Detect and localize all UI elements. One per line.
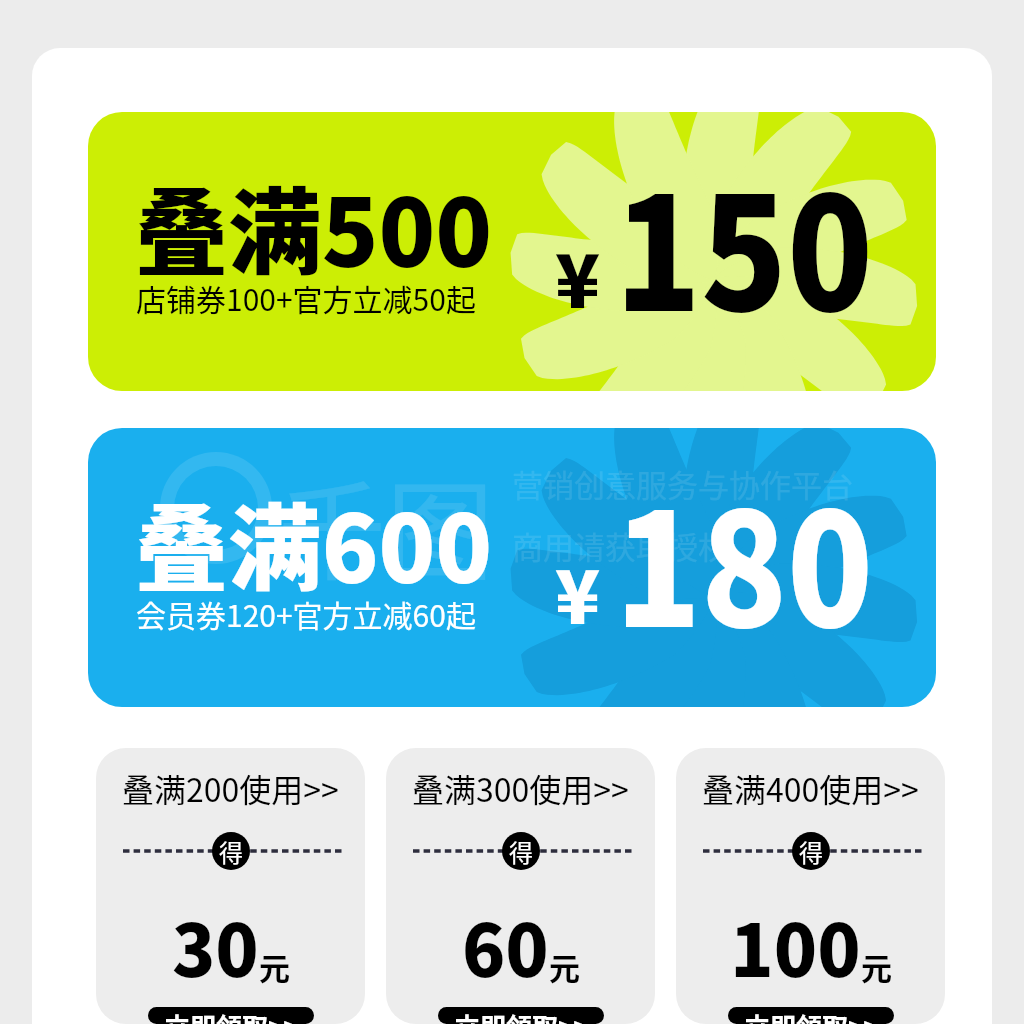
staticText: 千图 bbox=[278, 446, 495, 602]
button[interactable]: 叠满400使用>> bbox=[676, 748, 945, 1024]
staticText: 叠满300使用>> bbox=[412, 765, 629, 811]
staticText: 叠满200使用>> bbox=[122, 765, 339, 811]
staticText: 得 bbox=[509, 834, 533, 869]
staticText: 立即领取>> bbox=[164, 1007, 299, 1024]
staticText: 立即领取>> bbox=[454, 1007, 589, 1024]
staticText: 立即领取>> bbox=[744, 1007, 879, 1024]
staticText: 得 bbox=[219, 834, 243, 869]
staticText: 商用请获取授权 bbox=[512, 523, 729, 568]
staticText: 150 bbox=[615, 129, 873, 356]
staticText: 元 bbox=[549, 944, 580, 989]
button[interactable]: 立即领取>> bbox=[148, 1007, 314, 1024]
staticText: 60 bbox=[462, 893, 549, 997]
staticText: 100 bbox=[730, 893, 861, 997]
staticText: ¥ bbox=[555, 222, 601, 329]
staticText: ¥ bbox=[555, 538, 601, 645]
staticText: 得 bbox=[799, 834, 823, 869]
staticText: 叠满500 bbox=[135, 158, 492, 294]
staticText: 会员券120+官方立减60起 bbox=[136, 592, 476, 635]
staticText: 元 bbox=[259, 944, 290, 989]
button[interactable]: 立即领取>> bbox=[438, 1007, 604, 1024]
staticText: 叠满400使用>> bbox=[702, 765, 919, 811]
staticText: 营销创意服务与协作平台 bbox=[512, 461, 853, 506]
staticText: 叠满600 bbox=[135, 474, 492, 610]
button[interactable]: 叠满300使用>> bbox=[386, 748, 655, 1024]
button[interactable]: 叠满200使用>> bbox=[96, 748, 365, 1024]
button[interactable]: 叠满500 bbox=[88, 112, 936, 391]
staticText: 180 bbox=[615, 445, 873, 672]
staticText: 30 bbox=[172, 893, 259, 997]
button[interactable]: 立即领取>> bbox=[728, 1007, 894, 1024]
staticText: 元 bbox=[861, 944, 892, 989]
button[interactable]: 千图 bbox=[88, 428, 936, 707]
staticText: 店铺券100+官方立减50起 bbox=[136, 276, 476, 319]
